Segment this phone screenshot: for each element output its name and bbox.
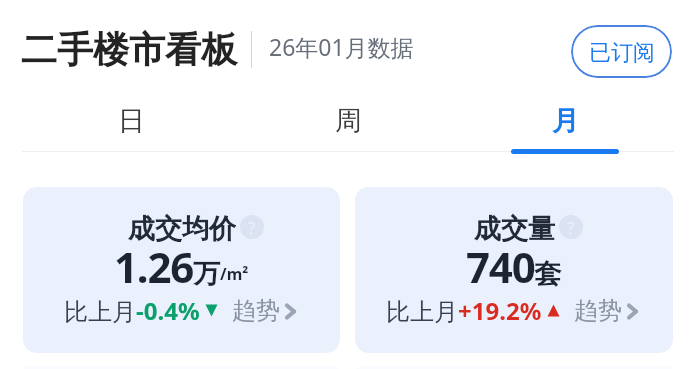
staticText: 26年01月数据 xyxy=(269,31,414,62)
staticText: ? xyxy=(248,216,256,239)
staticText: 比上月+19.2% xyxy=(386,294,542,327)
button[interactable]: 趋势 xyxy=(574,296,638,326)
button[interactable]: 成交均价 xyxy=(23,187,340,353)
staticText: 比上月-0.4% xyxy=(64,294,200,327)
button[interactable]: 周 xyxy=(240,94,457,147)
button[interactable]: 帮助 xyxy=(559,215,583,239)
staticText: 趋势 xyxy=(232,296,280,326)
button[interactable]: 成交量 xyxy=(355,187,673,353)
staticText: 740套 xyxy=(466,238,562,295)
button[interactable]: 日 xyxy=(22,94,240,147)
staticText: 周 xyxy=(335,104,362,138)
staticText: 日 xyxy=(118,104,145,138)
staticText: ? xyxy=(567,216,575,239)
staticText: 成交量 xyxy=(474,212,555,242)
staticText: 月 xyxy=(552,104,579,138)
button[interactable]: 帮助 xyxy=(240,215,264,239)
button[interactable]: 已订阅 xyxy=(571,25,672,78)
button[interactable]: 趋势 xyxy=(232,296,296,326)
staticText: 1.26万/m² xyxy=(114,238,249,295)
staticText: 成交均价 xyxy=(128,212,236,242)
staticText: 趋势 xyxy=(574,296,622,326)
staticText: 二手楼市看板 xyxy=(21,27,237,72)
button[interactable]: 月 xyxy=(457,94,674,147)
staticText: 已订阅 xyxy=(589,39,655,67)
